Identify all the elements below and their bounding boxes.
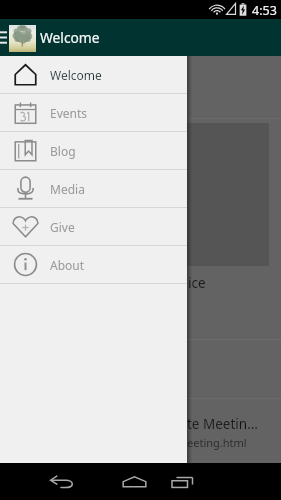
- staticText: Give: [50, 219, 75, 235]
- button[interactable]: Open navigation drawer: [0, 19, 7, 56]
- button[interactable]: About: [0, 246, 187, 284]
- button[interactable]: Media: [0, 170, 187, 208]
- staticText: eeting.html: [187, 435, 247, 450]
- staticText: Media: [50, 181, 85, 197]
- staticText: Welcome: [50, 67, 102, 83]
- button[interactable]: Recents: [164, 463, 200, 500]
- staticText: Events: [50, 105, 88, 121]
- button[interactable]: Give: [0, 208, 187, 246]
- button[interactable]: Events: [0, 94, 187, 132]
- staticText: ice: [188, 274, 206, 292]
- button[interactable]: Blog: [0, 132, 187, 170]
- button[interactable]: Home: [116, 463, 152, 500]
- button[interactable]: Welcome: [0, 56, 187, 94]
- staticText: 4:53: [252, 2, 277, 19]
- staticText: te Meetin…: [187, 415, 258, 433]
- staticText: Blog: [50, 143, 76, 159]
- button[interactable]: Back: [44, 463, 80, 500]
- staticText: Welcome: [40, 28, 100, 47]
- staticText: About: [50, 257, 85, 273]
